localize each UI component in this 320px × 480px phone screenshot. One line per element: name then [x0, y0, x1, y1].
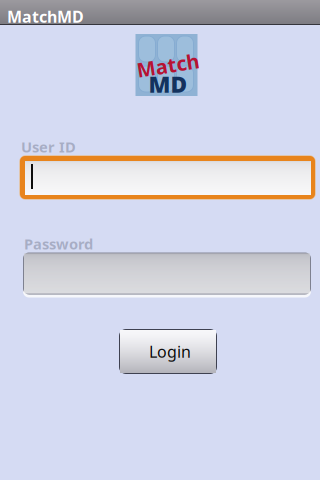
- staticText: Password: [24, 234, 93, 253]
- button[interactable]: Password: [23, 252, 311, 297]
- staticText: Match: [136, 52, 199, 79]
- staticText: MD: [148, 69, 187, 99]
- staticText: MatchMD: [7, 6, 84, 27]
- button[interactable]: Login: [119, 329, 217, 374]
- staticText: User ID: [21, 137, 76, 156]
- button[interactable]: User ID: [19, 155, 316, 200]
- staticText: Login: [149, 341, 191, 362]
